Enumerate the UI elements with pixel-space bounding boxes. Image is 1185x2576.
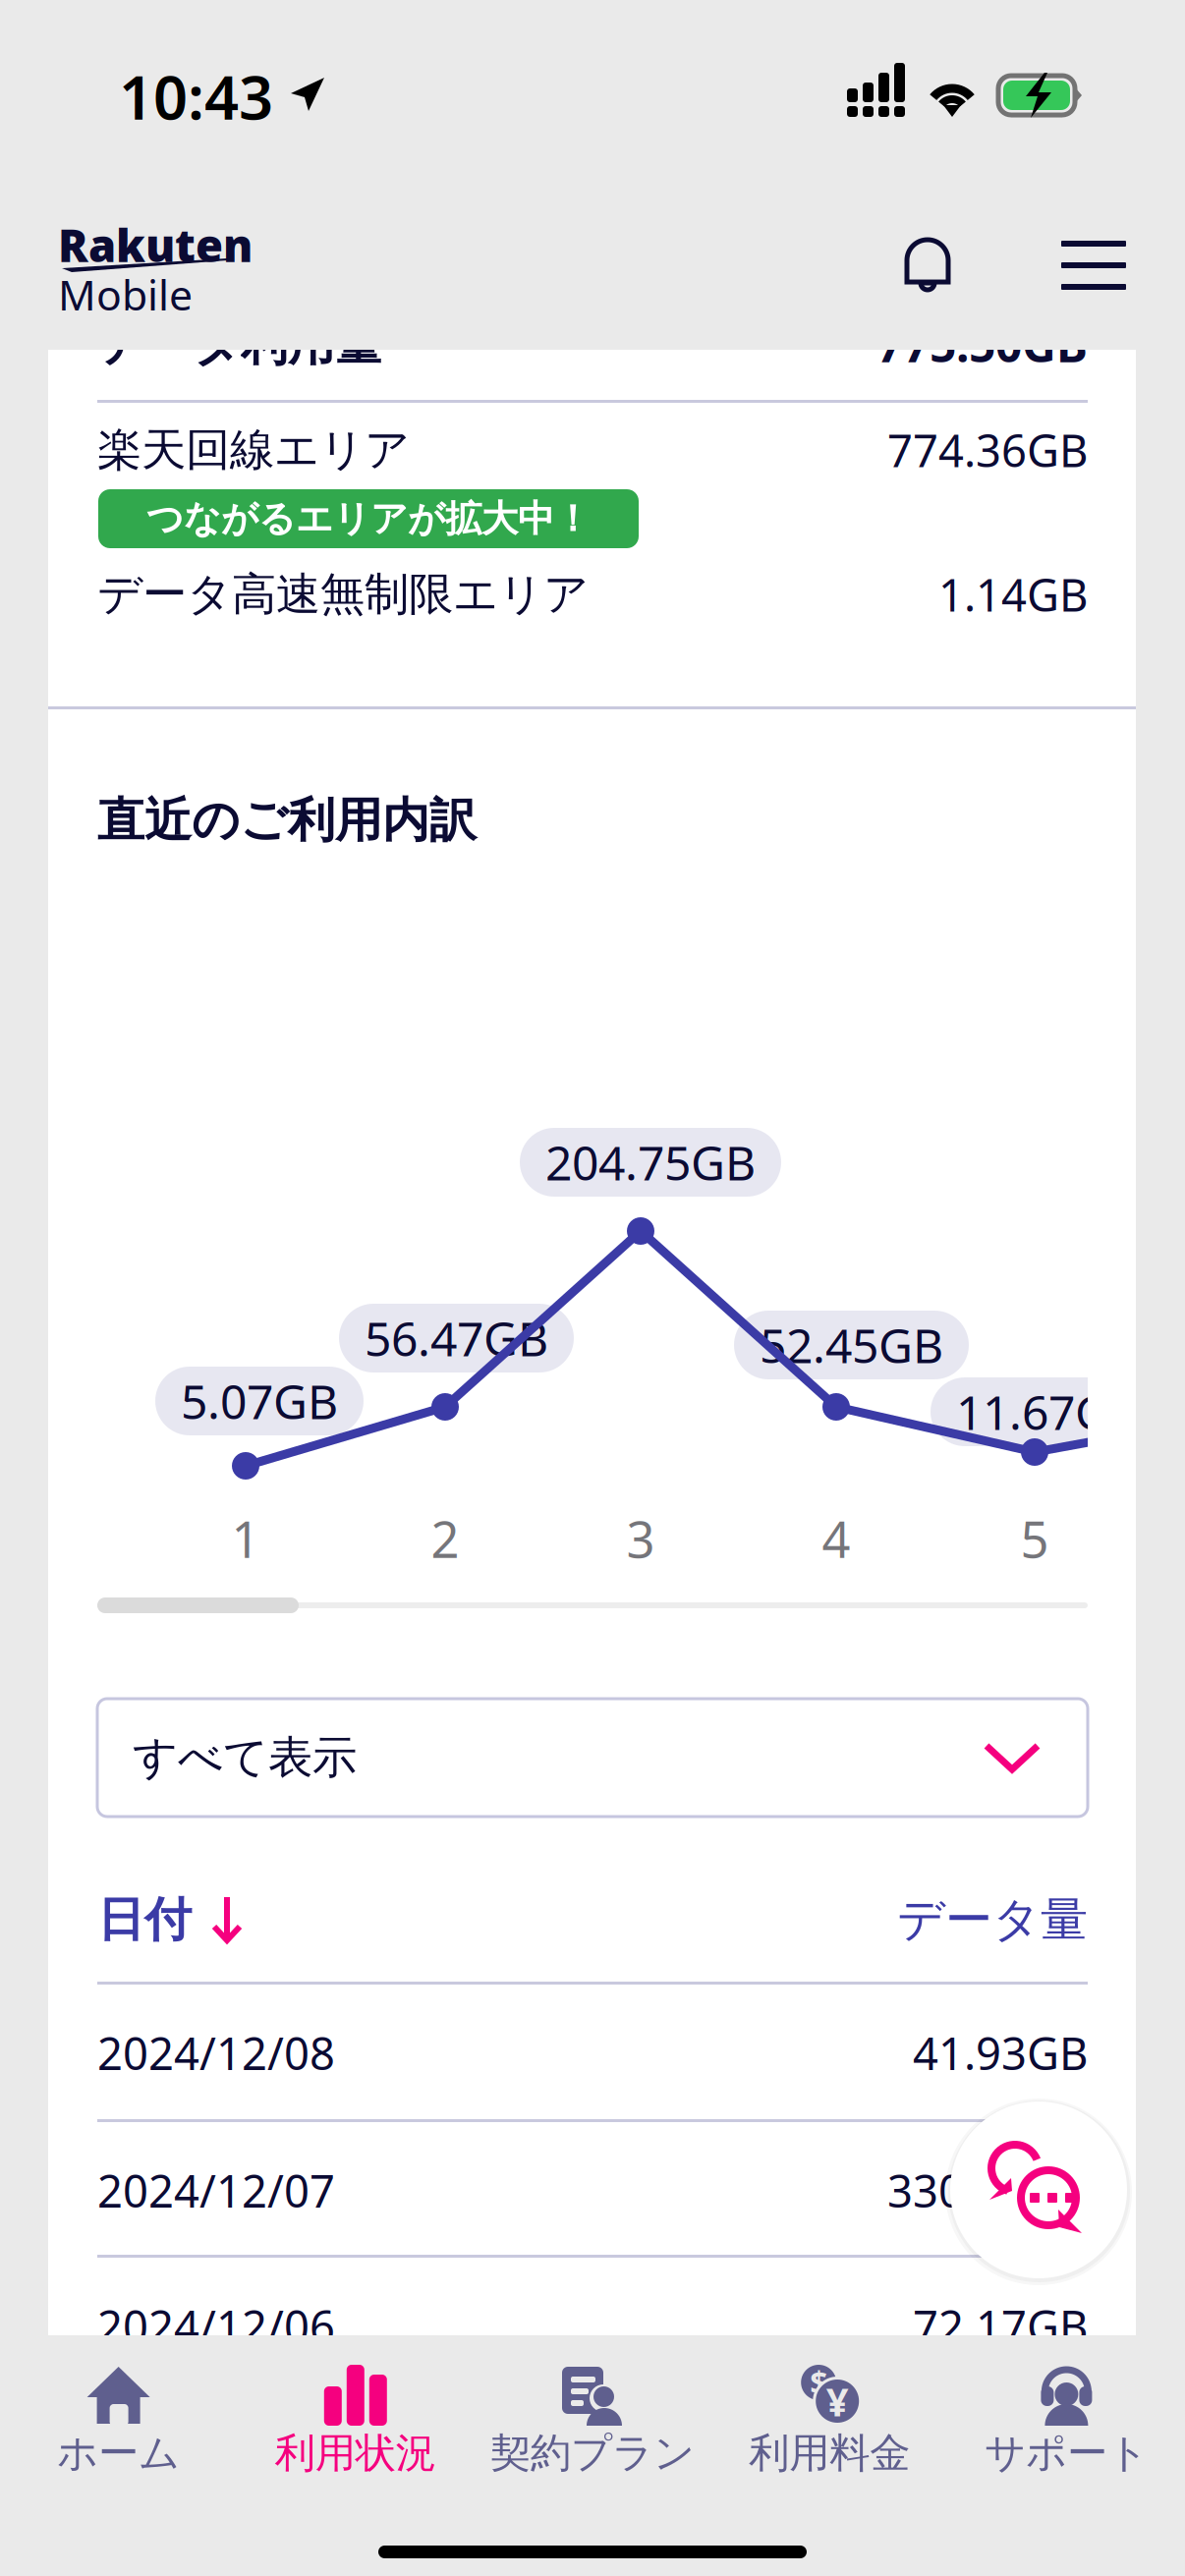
staticText: 直近のご利用内訳: [97, 791, 477, 849]
staticText: データ利用量: [97, 315, 382, 373]
staticText: Mobile: [58, 266, 193, 322]
staticText: 1: [231, 1506, 260, 1572]
staticText: $: [810, 2362, 828, 2403]
staticText: 3: [626, 1506, 655, 1572]
staticText: Rakuten: [58, 215, 253, 274]
staticText: 56.47GB: [365, 1307, 548, 1369]
button[interactable]: ホーム: [0, 2365, 237, 2483]
staticText: 2: [431, 1506, 459, 1572]
staticText: 72.17GB: [913, 2296, 1088, 2356]
staticText: 4: [822, 1506, 850, 1572]
staticText: 2024/12/07: [97, 2161, 335, 2220]
staticText: つながるエリアが拡大中！: [146, 496, 591, 541]
staticText: 2024/12/06: [97, 2296, 335, 2356]
staticText: 774.36GB: [887, 420, 1088, 480]
button[interactable]: $: [711, 2365, 948, 2483]
staticText: 利用状況: [275, 2428, 436, 2478]
staticText: 楽天回線エリア: [97, 423, 410, 477]
button[interactable]: 利用状況: [237, 2365, 474, 2483]
staticText: 330.96GB: [887, 2161, 1088, 2220]
staticText: 11.67GB: [956, 1380, 1140, 1443]
button[interactable]: Chat support: [950, 2101, 1127, 2278]
staticText: 10:43: [119, 56, 273, 136]
staticText: ¥: [826, 2375, 849, 2427]
button[interactable]: 2024/12/07: [97, 2124, 1088, 2257]
staticText: ホーム: [57, 2428, 180, 2478]
button[interactable]: 日付: [97, 1886, 250, 1953]
button[interactable]: 2024/12/08: [97, 1987, 1088, 2119]
staticText: 利用料金: [749, 2428, 910, 2478]
staticText: データ量: [897, 1891, 1088, 1949]
staticText: 41.93GB: [913, 2023, 1088, 2082]
staticText: サポート: [984, 2428, 1149, 2478]
staticText: 2024/12/08: [97, 2023, 335, 2082]
staticText: 5.07GB: [181, 1370, 338, 1432]
staticText: 日付: [97, 1891, 192, 1949]
staticText: 204.75GB: [545, 1131, 756, 1193]
staticText: 契約プラン: [490, 2428, 695, 2478]
button[interactable]: データ量: [897, 1886, 1088, 1953]
button[interactable]: Notifications: [890, 223, 965, 308]
staticText: 52.45GB: [760, 1314, 943, 1376]
staticText: 1.14GB: [938, 565, 1088, 624]
button[interactable]: すべて表示: [97, 1699, 1088, 1817]
staticText: すべて表示: [133, 1730, 357, 1785]
button[interactable]: 2024/12/06: [97, 2260, 1088, 2392]
button[interactable]: 契約プラン: [474, 2365, 711, 2483]
staticText: 775.50GB: [876, 313, 1088, 375]
button[interactable]: Menu: [1047, 227, 1140, 304]
staticText: 5: [1020, 1506, 1049, 1572]
staticText: データ高速無制限エリア: [97, 567, 589, 622]
button[interactable]: サポート: [948, 2365, 1185, 2483]
